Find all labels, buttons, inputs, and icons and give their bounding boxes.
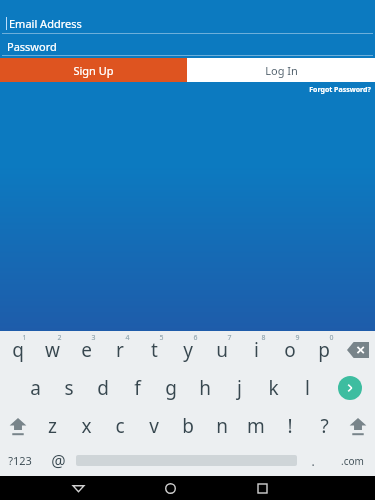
button[interactable]: .com bbox=[329, 445, 375, 476]
staticText: ?123 bbox=[8, 453, 32, 468]
button[interactable]: Recent apps bbox=[242, 476, 282, 500]
button[interactable]: @ bbox=[40, 445, 76, 476]
staticText: w bbox=[45, 337, 60, 363]
button[interactable]: c bbox=[103, 407, 137, 445]
button[interactable]: ! bbox=[273, 407, 307, 445]
staticText: s bbox=[64, 375, 74, 401]
staticText: p bbox=[318, 337, 330, 363]
staticText: u bbox=[216, 337, 228, 363]
button[interactable]: 0 bbox=[307, 331, 341, 369]
staticText: y bbox=[183, 337, 193, 363]
button[interactable]: s bbox=[52, 369, 86, 407]
staticText: Password bbox=[7, 39, 57, 54]
button[interactable]: 5 bbox=[137, 331, 171, 369]
button[interactable]: l bbox=[290, 369, 324, 407]
staticText: f bbox=[134, 375, 141, 401]
staticText: 3 bbox=[91, 333, 96, 343]
staticText: . bbox=[311, 453, 315, 469]
button[interactable]: n bbox=[205, 407, 239, 445]
staticText: 9 bbox=[295, 333, 300, 343]
staticText: 8 bbox=[261, 333, 266, 343]
button[interactable]: a bbox=[18, 369, 52, 407]
button[interactable]: 6 bbox=[171, 331, 205, 369]
button[interactable]: Log In bbox=[187, 58, 375, 82]
button[interactable]: 2 bbox=[35, 331, 69, 369]
staticText: a bbox=[30, 375, 41, 401]
button[interactable]: g bbox=[154, 369, 188, 407]
staticText: j bbox=[237, 375, 242, 401]
staticText: h bbox=[199, 375, 211, 401]
button[interactable]: . bbox=[297, 445, 329, 476]
button[interactable]: j bbox=[222, 369, 256, 407]
button[interactable]: 8 bbox=[239, 331, 273, 369]
staticText: q bbox=[12, 337, 24, 363]
button[interactable]: k bbox=[256, 369, 290, 407]
button[interactable]: b bbox=[171, 407, 205, 445]
staticText: m bbox=[247, 413, 265, 439]
button[interactable]: 1 bbox=[0, 331, 35, 369]
button[interactable]: ? bbox=[307, 407, 341, 445]
button[interactable]: v bbox=[137, 407, 171, 445]
button[interactable]: d bbox=[86, 369, 120, 407]
staticText: 7 bbox=[227, 333, 232, 343]
button[interactable]: 7 bbox=[205, 331, 239, 369]
staticText: ! bbox=[287, 413, 293, 439]
staticText: b bbox=[182, 413, 194, 439]
staticText: k bbox=[268, 375, 279, 401]
staticText: z bbox=[48, 413, 57, 439]
staticText: o bbox=[284, 337, 296, 363]
staticText: i bbox=[254, 337, 259, 363]
staticText: 6 bbox=[193, 333, 198, 343]
button[interactable]: Password bbox=[0, 38, 375, 55]
button[interactable]: Sign Up bbox=[0, 58, 187, 82]
staticText: l bbox=[305, 375, 310, 401]
staticText: @ bbox=[51, 450, 66, 472]
button[interactable]: Back bbox=[58, 476, 98, 500]
staticText: g bbox=[165, 375, 177, 401]
staticText: 2 bbox=[57, 333, 62, 343]
button[interactable]: Shift bbox=[0, 407, 35, 445]
button[interactable]: Shift bbox=[341, 407, 375, 445]
button[interactable]: m bbox=[239, 407, 273, 445]
staticText: Sign Up bbox=[73, 63, 114, 78]
button[interactable]: ?123 bbox=[0, 445, 40, 476]
staticText: c bbox=[115, 413, 125, 439]
staticText: t bbox=[151, 337, 158, 363]
staticText: ? bbox=[320, 413, 329, 439]
staticText: Email Address bbox=[9, 16, 82, 31]
button[interactable]: x bbox=[69, 407, 103, 445]
staticText: e bbox=[81, 337, 92, 363]
staticText: Log In bbox=[265, 63, 298, 78]
button[interactable]: Email Address bbox=[0, 14, 375, 33]
button[interactable]: Home bbox=[150, 476, 190, 500]
staticText: 4 bbox=[125, 333, 130, 343]
button[interactable]: z bbox=[35, 407, 69, 445]
button[interactable]: 9 bbox=[273, 331, 307, 369]
button[interactable] bbox=[76, 445, 297, 476]
staticText: n bbox=[216, 413, 228, 439]
button[interactable]: h bbox=[188, 369, 222, 407]
button[interactable]: 3 bbox=[69, 331, 103, 369]
staticText: v bbox=[149, 413, 159, 439]
button[interactable]: Enter bbox=[324, 369, 375, 407]
staticText: r bbox=[116, 337, 124, 363]
button[interactable]: f bbox=[120, 369, 154, 407]
button[interactable]: 4 bbox=[103, 331, 137, 369]
staticText: Forgot Password? bbox=[309, 85, 371, 95]
button[interactable]: Forgot Password? bbox=[309, 85, 375, 95]
staticText: 5 bbox=[159, 333, 164, 343]
staticText: .com bbox=[341, 454, 364, 468]
staticText: x bbox=[81, 413, 92, 439]
staticText: 1 bbox=[22, 333, 27, 343]
button[interactable]: Backspace bbox=[341, 331, 375, 369]
staticText: 0 bbox=[329, 333, 334, 343]
staticText: d bbox=[97, 375, 109, 401]
